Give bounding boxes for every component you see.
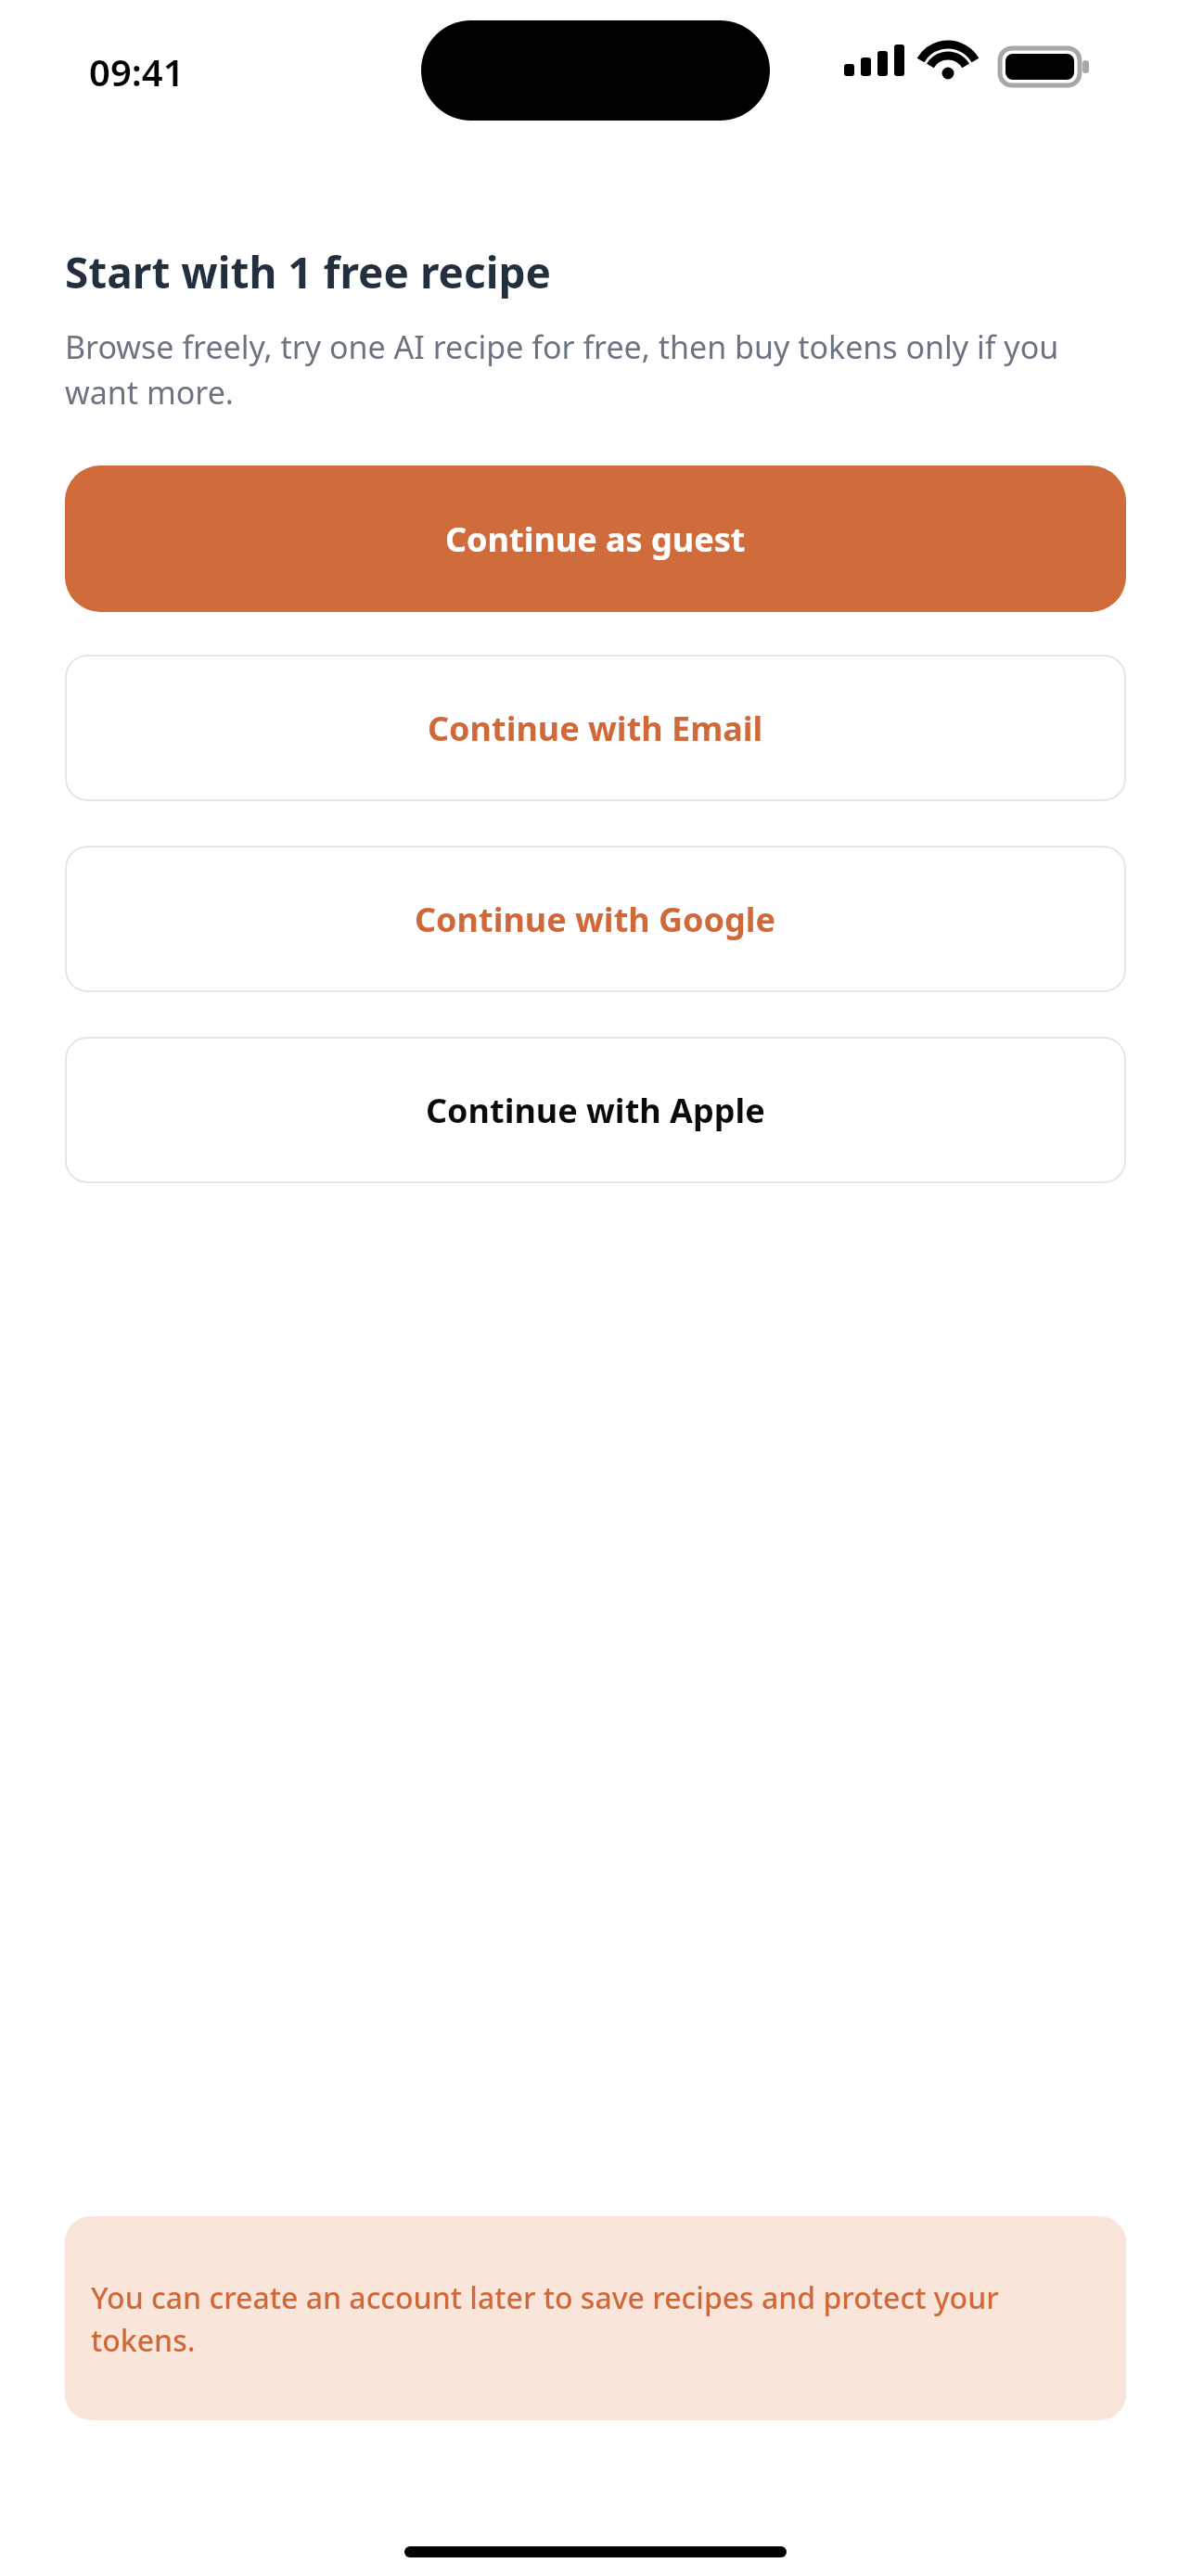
staticText: Continue with Email <box>428 706 763 751</box>
staticText: Continue with Apple <box>426 1088 765 1133</box>
staticText: You can create an account later to save … <box>91 2277 1100 2360</box>
button[interactable]: You can create an account later to save … <box>65 2216 1126 2420</box>
other: Signal, Wi-Fi and battery status <box>844 41 1104 85</box>
staticText: Continue as guest <box>445 516 746 562</box>
button[interactable]: Continue with Email <box>65 655 1126 801</box>
staticText: Start with 1 free recipe <box>65 243 552 301</box>
staticText: Continue with Google <box>415 897 776 942</box>
button[interactable]: Continue as guest <box>65 465 1126 612</box>
button[interactable]: Continue with Apple <box>65 1037 1126 1183</box>
staticText: Browse freely, try one AI recipe for fre… <box>65 325 1119 414</box>
button[interactable]: Continue with Google <box>65 846 1126 992</box>
staticText: 09:41 <box>89 46 185 96</box>
